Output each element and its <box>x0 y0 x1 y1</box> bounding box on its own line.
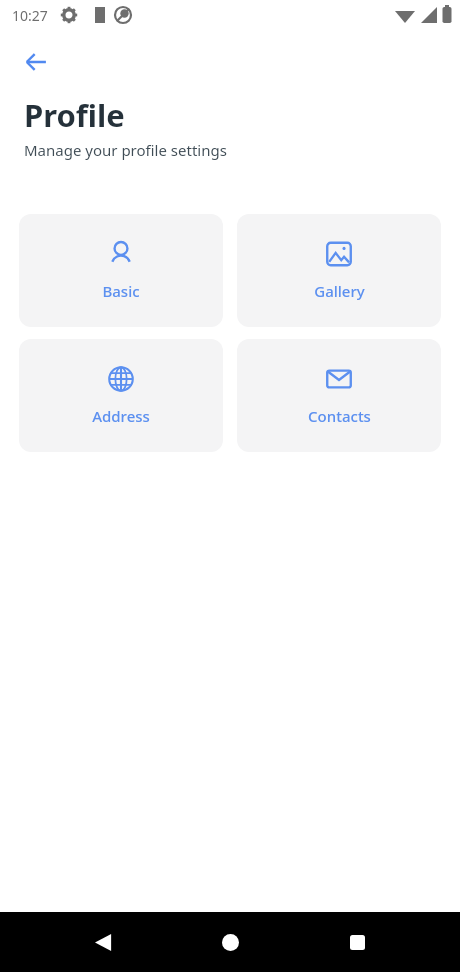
button[interactable]: Back <box>18 44 54 80</box>
button[interactable]: Basic <box>19 214 223 327</box>
staticText: Manage your profile settings <box>24 140 227 160</box>
button[interactable]: Contacts <box>237 339 441 452</box>
button[interactable]: Gallery <box>237 214 441 327</box>
button[interactable]: Recent apps <box>333 918 381 966</box>
staticText: Basic <box>102 281 140 301</box>
button[interactable]: Home <box>206 918 254 966</box>
staticText: Address <box>92 406 150 426</box>
staticText: Gallery <box>314 281 365 301</box>
button[interactable]: Address <box>19 339 223 452</box>
staticText: Contacts <box>308 406 371 426</box>
staticText: Profile <box>24 94 125 136</box>
staticText: 10:27 <box>12 6 48 25</box>
button[interactable]: Back <box>79 918 127 966</box>
